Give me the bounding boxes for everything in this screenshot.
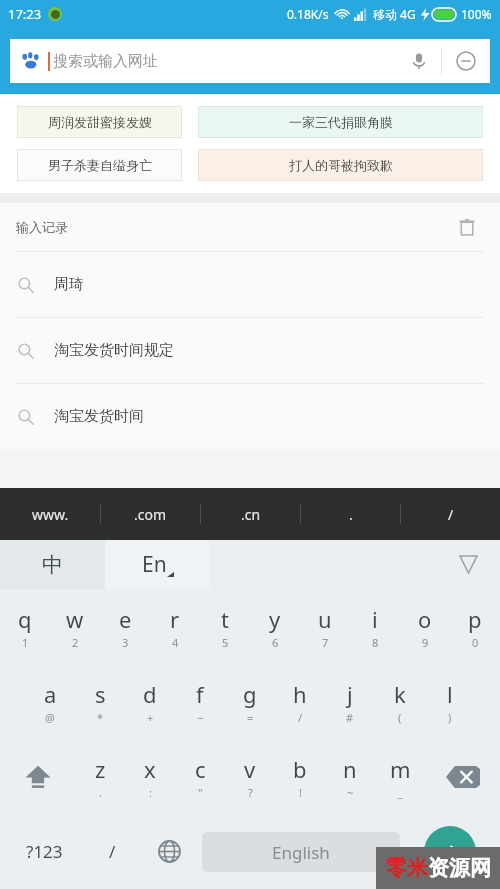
staticText: 2 bbox=[72, 635, 79, 650]
staticText: 100% bbox=[461, 6, 492, 22]
staticText: j bbox=[347, 679, 353, 709]
button[interactable]: k bbox=[375, 664, 425, 739]
staticText: ) bbox=[448, 710, 452, 725]
staticText: o bbox=[418, 604, 432, 634]
button[interactable]: Shift bbox=[0, 739, 75, 814]
button[interactable]: t bbox=[200, 589, 250, 664]
button[interactable]: Go bbox=[424, 826, 476, 878]
button[interactable]: h bbox=[275, 664, 325, 739]
button[interactable]: y bbox=[250, 589, 300, 664]
button[interactable]: Switch language bbox=[141, 814, 198, 889]
button[interactable]: 淘宝发货时间 bbox=[0, 384, 500, 449]
staticText: 搜索或输入网址 bbox=[53, 52, 158, 71]
staticText: w bbox=[66, 604, 84, 634]
button[interactable]: f bbox=[175, 664, 225, 739]
staticText: c bbox=[195, 754, 206, 784]
staticText: / bbox=[298, 710, 303, 725]
button[interactable]: / bbox=[84, 814, 141, 889]
staticText: s bbox=[95, 679, 106, 709]
button[interactable]: z bbox=[75, 739, 125, 814]
staticText: 1 bbox=[22, 635, 29, 650]
staticText: d bbox=[143, 679, 157, 709]
button[interactable]: Hide keyboard bbox=[436, 540, 500, 589]
button[interactable]: j bbox=[325, 664, 375, 739]
button[interactable]: En bbox=[105, 540, 210, 589]
button[interactable]: p bbox=[450, 589, 500, 664]
staticText: 移动 4G bbox=[373, 6, 416, 22]
button[interactable]: 周润发甜蜜接发嫂 bbox=[17, 106, 182, 138]
button[interactable]: i bbox=[350, 589, 400, 664]
button[interactable]: s bbox=[75, 664, 125, 739]
staticText: 9 bbox=[422, 635, 429, 650]
button[interactable]: ?123 bbox=[4, 814, 84, 889]
button[interactable]: English bbox=[202, 832, 400, 872]
staticText: y bbox=[269, 604, 281, 634]
staticText: .com bbox=[134, 505, 167, 524]
staticText: / bbox=[109, 840, 116, 863]
staticText: ? bbox=[248, 785, 253, 800]
staticText: 8 bbox=[372, 635, 379, 650]
button[interactable]: Backspace bbox=[425, 739, 500, 814]
staticText: ~ bbox=[347, 785, 354, 800]
staticText: n bbox=[343, 754, 357, 784]
button[interactable]: u bbox=[300, 589, 350, 664]
button[interactable]: 淘宝发货时间规定 bbox=[0, 318, 500, 383]
button[interactable]: r bbox=[150, 589, 200, 664]
button[interactable]: / bbox=[401, 488, 500, 540]
staticText: " bbox=[198, 785, 203, 800]
button[interactable]: b bbox=[275, 739, 325, 814]
button[interactable]: 周琦 bbox=[0, 252, 500, 317]
button[interactable]: d bbox=[125, 664, 175, 739]
button[interactable]: .cn bbox=[201, 488, 300, 540]
staticText: # bbox=[346, 710, 354, 725]
button[interactable]: Voice search bbox=[397, 39, 441, 83]
button[interactable]: q bbox=[0, 589, 50, 664]
staticText: 3 bbox=[122, 635, 129, 650]
button[interactable]: c bbox=[175, 739, 225, 814]
button[interactable]: x bbox=[125, 739, 175, 814]
button[interactable]: . bbox=[301, 488, 400, 540]
staticText: ?123 bbox=[26, 840, 63, 863]
button[interactable]: .com bbox=[101, 488, 200, 540]
staticText: u bbox=[318, 604, 332, 634]
button[interactable]: www. bbox=[0, 488, 100, 540]
button[interactable]: w bbox=[50, 589, 100, 664]
staticText: r bbox=[170, 604, 180, 634]
staticText: 0 bbox=[472, 635, 479, 650]
button[interactable]: l bbox=[425, 664, 475, 739]
button[interactable]: n bbox=[325, 739, 375, 814]
button[interactable]: Clear history bbox=[450, 210, 484, 244]
button[interactable]: 打人的哥被拘致歉 bbox=[198, 149, 483, 181]
staticText: 17:23 bbox=[8, 5, 42, 23]
staticText: h bbox=[293, 679, 307, 709]
staticText: f bbox=[196, 679, 204, 709]
button[interactable]: a bbox=[25, 664, 75, 739]
staticText: − bbox=[197, 710, 204, 725]
staticText: 淘宝发货时间规定 bbox=[54, 341, 174, 360]
button[interactable]: e bbox=[100, 589, 150, 664]
staticText: x bbox=[144, 754, 156, 784]
button[interactable]: g bbox=[225, 664, 275, 739]
staticText: En bbox=[142, 550, 167, 579]
button[interactable]: o bbox=[400, 589, 450, 664]
staticText: v bbox=[244, 754, 256, 784]
button[interactable]: 一家三代捐眼角膜 bbox=[198, 106, 483, 138]
staticText: . bbox=[349, 505, 353, 524]
staticText: / bbox=[448, 505, 454, 524]
staticText: : bbox=[149, 785, 152, 800]
button[interactable]: 搜索或输入网址 bbox=[10, 39, 490, 83]
staticText: 周琦 bbox=[54, 275, 84, 294]
button[interactable]: Close bbox=[442, 39, 490, 83]
button[interactable]: v bbox=[225, 739, 275, 814]
button[interactable]: 男子杀妻自缢身亡 bbox=[17, 149, 182, 181]
staticText: g bbox=[243, 679, 257, 709]
staticText: 中 bbox=[42, 552, 63, 578]
button[interactable]: Chinese input bbox=[0, 540, 105, 589]
staticText: 男子杀妻自缢身亡 bbox=[48, 157, 152, 173]
staticText: English bbox=[272, 841, 330, 864]
staticText: @ bbox=[45, 710, 55, 725]
staticText: q bbox=[18, 604, 32, 634]
button[interactable]: m bbox=[375, 739, 425, 814]
staticText: * bbox=[97, 710, 104, 725]
staticText: l bbox=[447, 679, 453, 709]
